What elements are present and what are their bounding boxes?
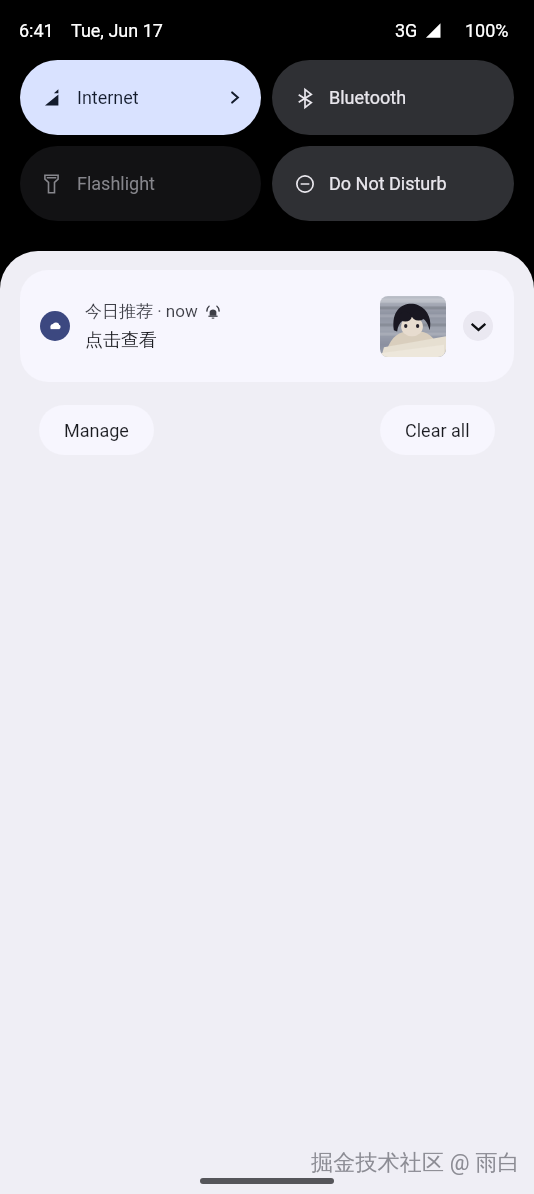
staticText: 点击查看 <box>85 329 157 352</box>
staticText: 6:41 <box>19 20 54 41</box>
button[interactable]: Expand notification <box>463 311 493 341</box>
staticText: Bluetooth <box>329 87 407 108</box>
button[interactable]: Do Not Disturb <box>272 146 514 221</box>
button[interactable]: Manage <box>39 405 154 455</box>
staticText: 今日推荐 · now <box>85 301 198 322</box>
button[interactable]: 今日推荐 · now <box>20 270 514 382</box>
button[interactable]: Internet <box>20 60 261 135</box>
button[interactable]: Bluetooth <box>272 60 514 135</box>
staticText: 掘金技术社区 @ 雨白 <box>311 1149 520 1177</box>
staticText: 100% <box>465 20 509 41</box>
staticText: Do Not Disturb <box>329 173 447 194</box>
staticText: Clear all <box>405 420 470 441</box>
staticText: Flashlight <box>77 173 155 194</box>
button[interactable]: Flashlight <box>20 146 261 221</box>
button[interactable]: Clear all <box>380 405 495 455</box>
staticText: 3G <box>395 20 418 41</box>
staticText: Internet <box>77 87 139 108</box>
staticText: Tue, Jun 17 <box>71 20 163 41</box>
staticText: Manage <box>64 420 129 441</box>
